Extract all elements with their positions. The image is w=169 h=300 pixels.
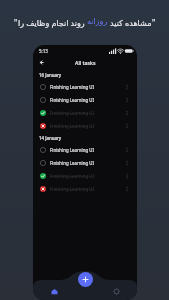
staticText: Finishing Learning UI <box>50 123 122 129</box>
button[interactable]: Toggle task <box>33 93 137 106</box>
staticText: " <box>14 17 18 28</box>
staticText: Finishing Learning UI <box>50 186 122 192</box>
button[interactable]: Toggle task <box>39 185 47 193</box>
button[interactable]: Settings <box>95 283 137 300</box>
staticText: Finishing Learning UI <box>50 147 122 153</box>
button[interactable]: More options <box>122 108 131 117</box>
button[interactable]: Add task <box>78 272 93 287</box>
button[interactable]: Home <box>33 283 75 300</box>
button[interactable]: Toggle task <box>33 80 137 93</box>
button[interactable]: Toggle task <box>33 156 137 169</box>
staticText: روزانه <box>87 17 108 26</box>
staticText: 14 January <box>39 135 62 141</box>
button[interactable]: Toggle task <box>33 106 137 119</box>
button[interactable]: More options <box>122 121 131 130</box>
button[interactable]: More options <box>122 184 131 193</box>
button[interactable]: Toggle task <box>33 182 137 195</box>
staticText: Finishing Learning UI <box>50 97 122 103</box>
staticText: روند انجام وظایف را <box>18 17 87 28</box>
staticText: 16 January <box>39 72 62 78</box>
button[interactable]: Toggle task <box>39 83 47 91</box>
button[interactable]: Toggle task <box>39 122 47 130</box>
button[interactable]: More options <box>122 95 131 104</box>
button[interactable]: Toggle task <box>39 109 47 117</box>
button[interactable]: Toggle task <box>39 96 47 104</box>
staticText: Finishing Learning UI <box>50 110 122 116</box>
staticText: All tasks <box>75 59 96 66</box>
staticText: مشاهده کنید <box>108 17 152 28</box>
button[interactable]: More options <box>122 82 131 91</box>
button[interactable]: Toggle task <box>33 119 137 132</box>
staticText: Finishing Learning UI <box>50 160 122 166</box>
button[interactable]: More options <box>122 171 131 180</box>
staticText: 5:13 <box>39 48 48 54</box>
button[interactable]: Toggle task <box>39 172 47 180</box>
staticText: Finishing Learning UI <box>50 173 122 179</box>
button[interactable]: More options <box>122 145 131 154</box>
button[interactable]: Back <box>37 58 46 67</box>
button[interactable]: More options <box>122 158 131 167</box>
button[interactable]: Toggle task <box>33 169 137 182</box>
button[interactable]: Toggle task <box>39 159 47 167</box>
staticText: Finishing Learning UI <box>50 84 122 90</box>
button[interactable]: Toggle task <box>33 143 137 156</box>
button[interactable]: Toggle task <box>39 146 47 154</box>
staticText: " <box>152 17 156 28</box>
